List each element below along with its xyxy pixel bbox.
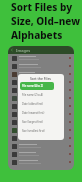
staticText: Sort Files by	[11, 0, 73, 14]
staticText: File name (Z to A)	[22, 93, 43, 97]
button[interactable]: Date (newest first)	[20, 109, 54, 117]
button[interactable]: Date (oldest first)	[20, 100, 54, 108]
staticText: Date (oldest first)	[22, 102, 43, 106]
staticText: File name (A to Z)	[22, 84, 43, 88]
staticText: Size, Old–new	[11, 14, 81, 28]
staticText: Alphabets	[11, 28, 63, 42]
staticText: Sort the Files	[30, 76, 52, 81]
button[interactable]: Back	[10, 48, 14, 52]
staticText: Date (newest first)	[22, 111, 45, 115]
staticText: Images	[16, 48, 31, 53]
staticText: Size (largest first)	[22, 120, 43, 124]
button[interactable]: File name (A to Z)	[20, 82, 54, 90]
button[interactable]: Size (smallest first)	[20, 127, 54, 135]
staticText: Size (smallest first)	[22, 129, 45, 133]
button[interactable]: File name (Z to A)	[20, 91, 54, 99]
button[interactable]: Size (largest first)	[20, 118, 54, 126]
